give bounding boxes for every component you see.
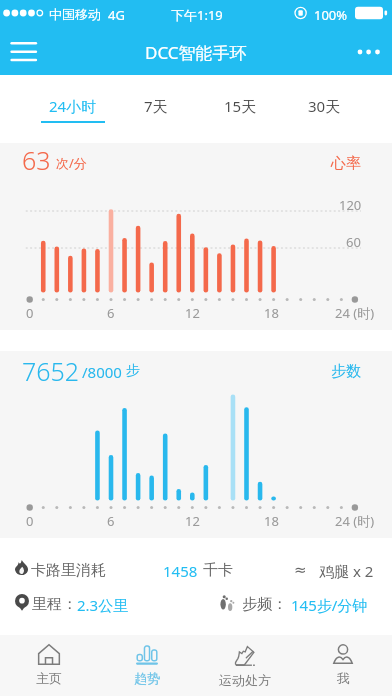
staticText: 12 [185,512,200,530]
staticText: 120 [339,196,362,214]
button[interactable]: 7天 [114,75,198,132]
staticText: 我 [337,670,350,686]
staticText: 里程： [32,595,77,614]
staticText: 24小时 [49,96,97,116]
staticText: 60 [346,233,361,251]
button[interactable]: 30天 [282,75,366,132]
staticText: 63 [22,143,51,177]
staticText: 1458 [163,561,198,581]
staticText: 下午1:19 [171,6,223,24]
staticText: 6 [107,512,115,530]
staticText: 7652 [22,354,80,388]
staticText: 24 (时) [335,304,375,322]
staticText: 12 [185,304,200,322]
staticText: 鸡腿 x 2 [319,561,374,581]
button[interactable]: 15天 [198,75,282,132]
staticText: 步数 [331,362,361,381]
staticText: 100% [314,6,348,24]
staticText: 趋势 [134,670,160,686]
staticText: 主页 [36,670,62,686]
staticText: 卡路里消耗 [31,561,106,580]
staticText: 0 [26,304,34,322]
staticText: 18 [264,512,279,530]
button[interactable]: More options [348,34,392,70]
staticText: 步频： [242,595,287,614]
staticText: 30天 [308,96,341,116]
staticText: 次/分 [56,154,87,172]
button[interactable]: 主页 [0,635,98,696]
staticText: /8000 [82,362,122,382]
staticText: 千卡 [203,561,233,580]
staticText: 7天 [144,96,168,116]
staticText: 24 (时) [335,512,375,530]
staticText: 心率 [331,154,361,173]
staticText: 中国移动 [49,6,101,22]
button[interactable]: 运动处方 [196,635,294,696]
staticText: DCC智能手环 [145,41,247,64]
staticText: 运动处方 [219,672,271,688]
staticText: 步 [126,362,140,380]
staticText: 15天 [224,96,257,116]
button[interactable]: Open navigation menu [4,34,44,70]
staticText: 145步/分钟 [291,595,368,615]
button[interactable]: 我 [294,635,392,696]
staticText: 0 [26,512,34,530]
staticText: 4G [108,6,125,24]
button[interactable]: 24小时 [31,75,114,132]
staticText: ≈ [294,561,307,578]
button[interactable]: 趋势 [98,635,196,696]
staticText: 6 [107,304,115,322]
staticText: 18 [264,304,279,322]
staticText: 2.3公里 [77,595,129,615]
